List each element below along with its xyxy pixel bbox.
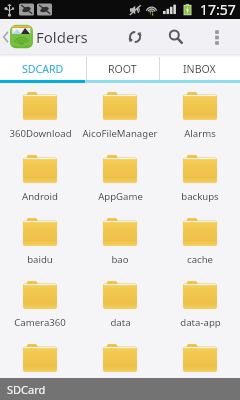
button[interactable]: AppGame (80, 146, 160, 209)
staticText: Android (22, 190, 58, 203)
button[interactable]: data-app (160, 272, 240, 335)
button[interactable]: SDCard (0, 378, 240, 400)
staticText: SDCard (7, 382, 46, 397)
button[interactable]: cache (160, 209, 240, 272)
staticText: cache (187, 253, 213, 266)
button[interactable]: INBOX (159, 57, 240, 80)
staticText: bao (111, 253, 129, 266)
staticText: Alarms (184, 127, 216, 140)
staticText: AppGame (98, 190, 143, 203)
button[interactable]: 360Download (0, 83, 80, 146)
button[interactable]: More options (195, 19, 239, 54)
button[interactable] (0, 335, 80, 378)
button[interactable]: ROOT (86, 57, 159, 80)
button[interactable]: SDCARD (0, 57, 86, 80)
button[interactable]: bao (80, 209, 160, 272)
button[interactable]: baidu (0, 209, 80, 272)
staticText: AicoFileManager (82, 127, 158, 140)
other: Navigate up (2, 29, 9, 45)
staticText: SDCARD (22, 62, 64, 76)
staticText: data (110, 316, 131, 329)
button[interactable]: backups (160, 146, 240, 209)
button[interactable]: AicoFileManager (80, 83, 160, 146)
staticText: data-app (180, 316, 221, 329)
button[interactable] (80, 335, 160, 378)
staticText: 17:57 (200, 0, 236, 19)
button[interactable]: Refresh (115, 19, 155, 54)
button[interactable]: Camera360 (0, 272, 80, 335)
button[interactable]: Android (0, 146, 80, 209)
button[interactable]: Search (155, 19, 195, 54)
staticText: backups (181, 190, 219, 203)
staticText: baidu (27, 253, 53, 266)
staticText: INBOX (183, 62, 216, 76)
staticText: Folders (36, 27, 88, 47)
staticText: ROOT (108, 62, 137, 76)
staticText: Camera360 (14, 316, 66, 329)
button[interactable]: data (80, 272, 160, 335)
button[interactable]: Alarms (160, 83, 240, 146)
button[interactable]: Navigate up (0, 24, 94, 49)
button[interactable] (160, 335, 240, 378)
staticText: 360Download (9, 127, 72, 140)
